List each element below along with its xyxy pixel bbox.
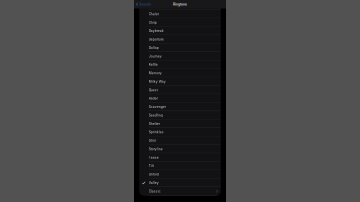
button[interactable]: By The Seaside xyxy=(139,1,220,10)
staticText: Departure xyxy=(149,37,164,41)
staticText: Quest xyxy=(149,88,158,92)
button[interactable]: Dollop xyxy=(139,44,220,52)
button[interactable]: Unfold xyxy=(139,170,220,179)
button[interactable]: Tilt xyxy=(139,162,220,170)
staticText: By The Seaside xyxy=(149,4,174,8)
staticText: Chalet xyxy=(149,12,159,16)
button[interactable]: Milky Way xyxy=(139,77,220,86)
staticText: Chirp xyxy=(149,20,157,24)
staticText: Sounds xyxy=(139,2,151,6)
staticText: Radar xyxy=(149,96,158,100)
button[interactable]: Memory xyxy=(139,69,220,77)
staticText: Kettle xyxy=(149,63,158,67)
staticText: Scavenger xyxy=(149,105,166,109)
button[interactable]: Sounds xyxy=(134,0,151,8)
button[interactable]: Daybreak xyxy=(139,27,220,35)
button[interactable]: Scavenger xyxy=(139,103,220,111)
staticText: Sprinkles xyxy=(149,130,164,134)
button[interactable]: Classic xyxy=(139,187,220,195)
staticText: Memory xyxy=(149,71,162,75)
staticText: Milky Way xyxy=(149,80,166,83)
staticText: Stint xyxy=(149,139,156,143)
staticText: Tease xyxy=(149,156,159,159)
staticText: Shelter xyxy=(149,122,160,126)
staticText: Tilt xyxy=(149,164,154,168)
staticText: Seedling xyxy=(149,113,163,117)
button[interactable]: Storyline xyxy=(139,145,220,153)
staticText: Classic xyxy=(149,189,161,193)
staticText: Journey xyxy=(149,54,162,58)
staticText: Dollop xyxy=(149,46,159,50)
button[interactable]: Kettle xyxy=(139,60,220,69)
button[interactable]: Chirp xyxy=(139,18,220,27)
button[interactable]: Tease xyxy=(139,153,220,162)
button[interactable]: Chalet xyxy=(139,10,220,18)
button[interactable]: Stint xyxy=(139,136,220,145)
button[interactable]: Sprinkles xyxy=(139,128,220,136)
staticText: Valley xyxy=(149,181,159,185)
button[interactable]: Radar xyxy=(139,94,220,103)
button[interactable]: Valley xyxy=(139,179,220,187)
button[interactable]: Departure xyxy=(139,35,220,43)
staticText: Unfold xyxy=(149,172,159,176)
button[interactable]: Journey xyxy=(139,52,220,60)
button[interactable]: Quest xyxy=(139,86,220,94)
staticText: Daybreak xyxy=(149,29,164,33)
staticText: Storyline xyxy=(149,147,163,151)
staticText: Ringtone xyxy=(173,2,187,6)
button[interactable]: Shelter xyxy=(139,119,220,128)
button[interactable]: Seedling xyxy=(139,111,220,119)
